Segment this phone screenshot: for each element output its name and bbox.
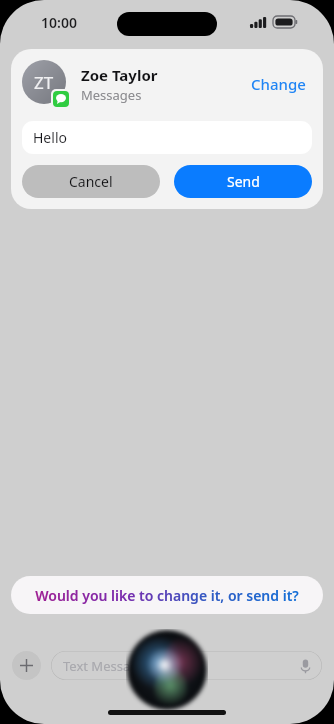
button[interactable]: Hello	[22, 121, 312, 154]
staticText: Text Message	[63, 657, 146, 675]
staticText: Cancel	[69, 172, 113, 191]
staticText: ZT	[34, 71, 54, 94]
button[interactable]: Add attachment	[12, 651, 41, 680]
staticText: Hello	[33, 128, 67, 147]
button[interactable]: Cancel	[22, 165, 160, 198]
other: Dictate	[297, 658, 313, 674]
staticText: Zoe Taylor	[81, 65, 158, 85]
staticText: Would you like to change it, or send it?	[35, 586, 299, 605]
staticText: Send	[227, 172, 260, 191]
staticText: Messages	[81, 86, 142, 104]
staticText: Change	[251, 74, 306, 94]
button[interactable]: Text Message	[51, 651, 322, 680]
button[interactable]: Change	[245, 68, 312, 100]
staticText: 10:00	[41, 13, 77, 32]
button[interactable]: Send	[174, 165, 312, 198]
